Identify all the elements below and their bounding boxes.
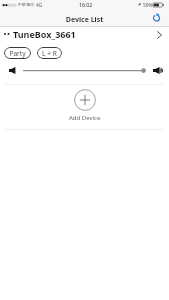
- staticText: 4G: [36, 2, 43, 9]
- button[interactable]: Refresh: [150, 11, 164, 25]
- staticText: Add Device: [69, 114, 101, 122]
- staticText: Party: [9, 49, 26, 58]
- staticText: 16:02: [79, 1, 93, 8]
- staticText: TuneBox_3661: [13, 28, 76, 40]
- staticText: 59%: [143, 2, 153, 9]
- staticText: 中華電信: [18, 2, 34, 7]
- button[interactable]: TuneBox_3661: [0, 27, 169, 41]
- staticText: Device List: [0, 15, 169, 25]
- button[interactable]: Party: [4, 47, 31, 59]
- button[interactable]: Add Device: [0, 88, 169, 122]
- button[interactable]: L + R: [37, 47, 62, 59]
- staticText: L + R: [42, 49, 57, 58]
